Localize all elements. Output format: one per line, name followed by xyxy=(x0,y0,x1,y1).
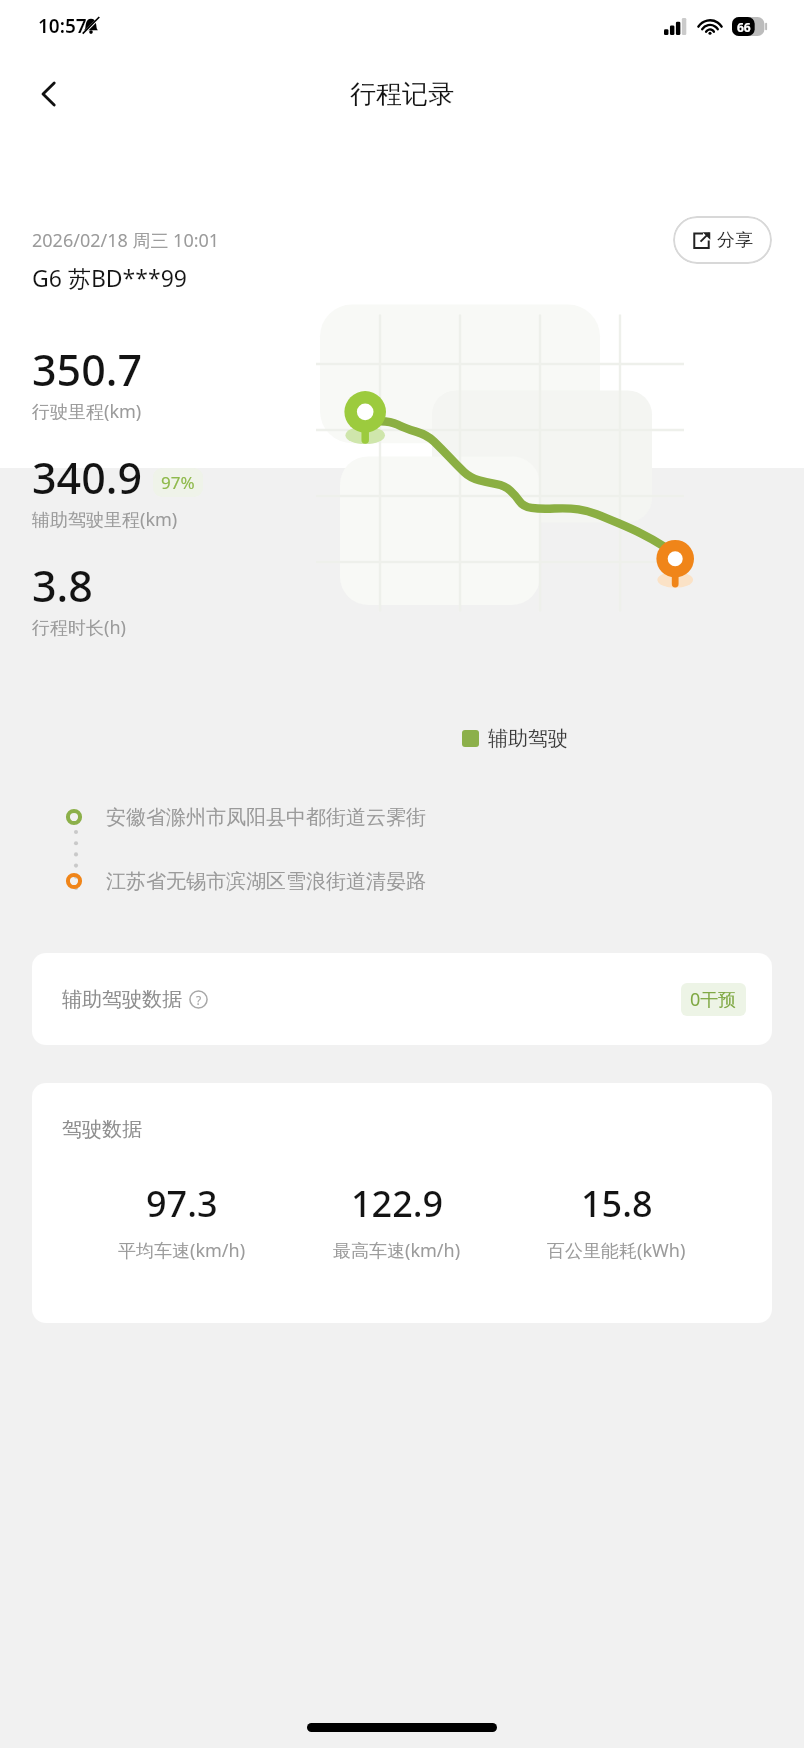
staticText: 安徽省滁州市凤阳县中都街道云霁街 xyxy=(106,805,426,830)
staticText: 江苏省无锡市滨湖区雪浪街道清晏路 xyxy=(106,869,426,894)
staticText: 平均车速(km/h) xyxy=(118,1238,246,1263)
staticText: 辅助驾驶数据 xyxy=(62,987,182,1012)
staticText: 350.7 xyxy=(32,340,143,399)
button[interactable]: 辅助驾驶数据 xyxy=(32,953,772,1045)
staticText: 340.9 xyxy=(32,448,143,507)
staticText: 15.8 xyxy=(581,1179,653,1228)
button[interactable]: Back xyxy=(20,65,78,123)
staticText: 2026/02/18 周三 10:01 xyxy=(32,228,220,253)
staticText: 分享 xyxy=(717,229,753,252)
staticText: 97.3 xyxy=(146,1179,218,1228)
staticText: 66 xyxy=(737,19,751,35)
staticText: 行驶里程(km) xyxy=(32,399,142,424)
staticText: 0干预 xyxy=(690,987,737,1012)
staticText: 辅助驾驶里程(km) xyxy=(32,507,178,532)
staticText: 10:57 xyxy=(38,13,87,39)
button[interactable]: 驾驶数据 xyxy=(32,1083,772,1323)
staticText: ? xyxy=(196,992,202,1008)
staticText: 最高车速(km/h) xyxy=(333,1238,461,1263)
staticText: G6 苏BD***99 xyxy=(32,262,187,293)
staticText: 3.8 xyxy=(32,556,93,615)
staticText: 行程记录 xyxy=(350,78,454,111)
staticText: 行程时长(h) xyxy=(32,615,126,640)
button[interactable]: 分享 xyxy=(673,216,772,264)
staticText: 百公里能耗(kWh) xyxy=(547,1238,686,1263)
staticText: 驾驶数据 xyxy=(62,1117,142,1142)
staticText: 122.9 xyxy=(351,1179,444,1228)
staticText: 97% xyxy=(161,471,195,494)
staticText: 辅助驾驶 xyxy=(488,726,568,751)
